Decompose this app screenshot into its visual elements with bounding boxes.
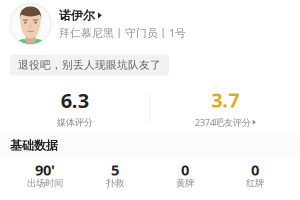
staticText: 拜仁慕尼黑丨守门员丨1号 bbox=[59, 26, 186, 40]
staticText: 出场时间 bbox=[27, 177, 63, 189]
staticText: 黄牌 bbox=[176, 177, 194, 189]
staticText: 90' bbox=[35, 160, 55, 179]
staticText: 6.3 bbox=[61, 87, 89, 114]
staticText: 退役吧，别丢人现眼坑队友了 bbox=[18, 58, 161, 71]
staticText: 扑救 bbox=[106, 177, 124, 189]
staticText: 0 bbox=[251, 160, 259, 179]
staticText: 媒体评分 bbox=[57, 116, 93, 128]
staticText: 5 bbox=[111, 160, 119, 179]
staticText: 基础数据 bbox=[10, 138, 58, 153]
staticText: 红牌 bbox=[246, 177, 264, 189]
button[interactable]: 6.3 bbox=[0, 87, 149, 128]
button[interactable]: 退役吧，别丢人现眼坑队友了 bbox=[0, 48, 300, 82]
button[interactable]: 3.7 bbox=[150, 86, 300, 128]
staticText: 2374吧友评分 bbox=[195, 116, 251, 128]
staticText: 0 bbox=[181, 160, 189, 179]
staticText: 诺伊尔 bbox=[59, 8, 95, 23]
button[interactable]: 诺伊尔 bbox=[0, 0, 300, 48]
staticText: 3.7 bbox=[211, 86, 239, 113]
